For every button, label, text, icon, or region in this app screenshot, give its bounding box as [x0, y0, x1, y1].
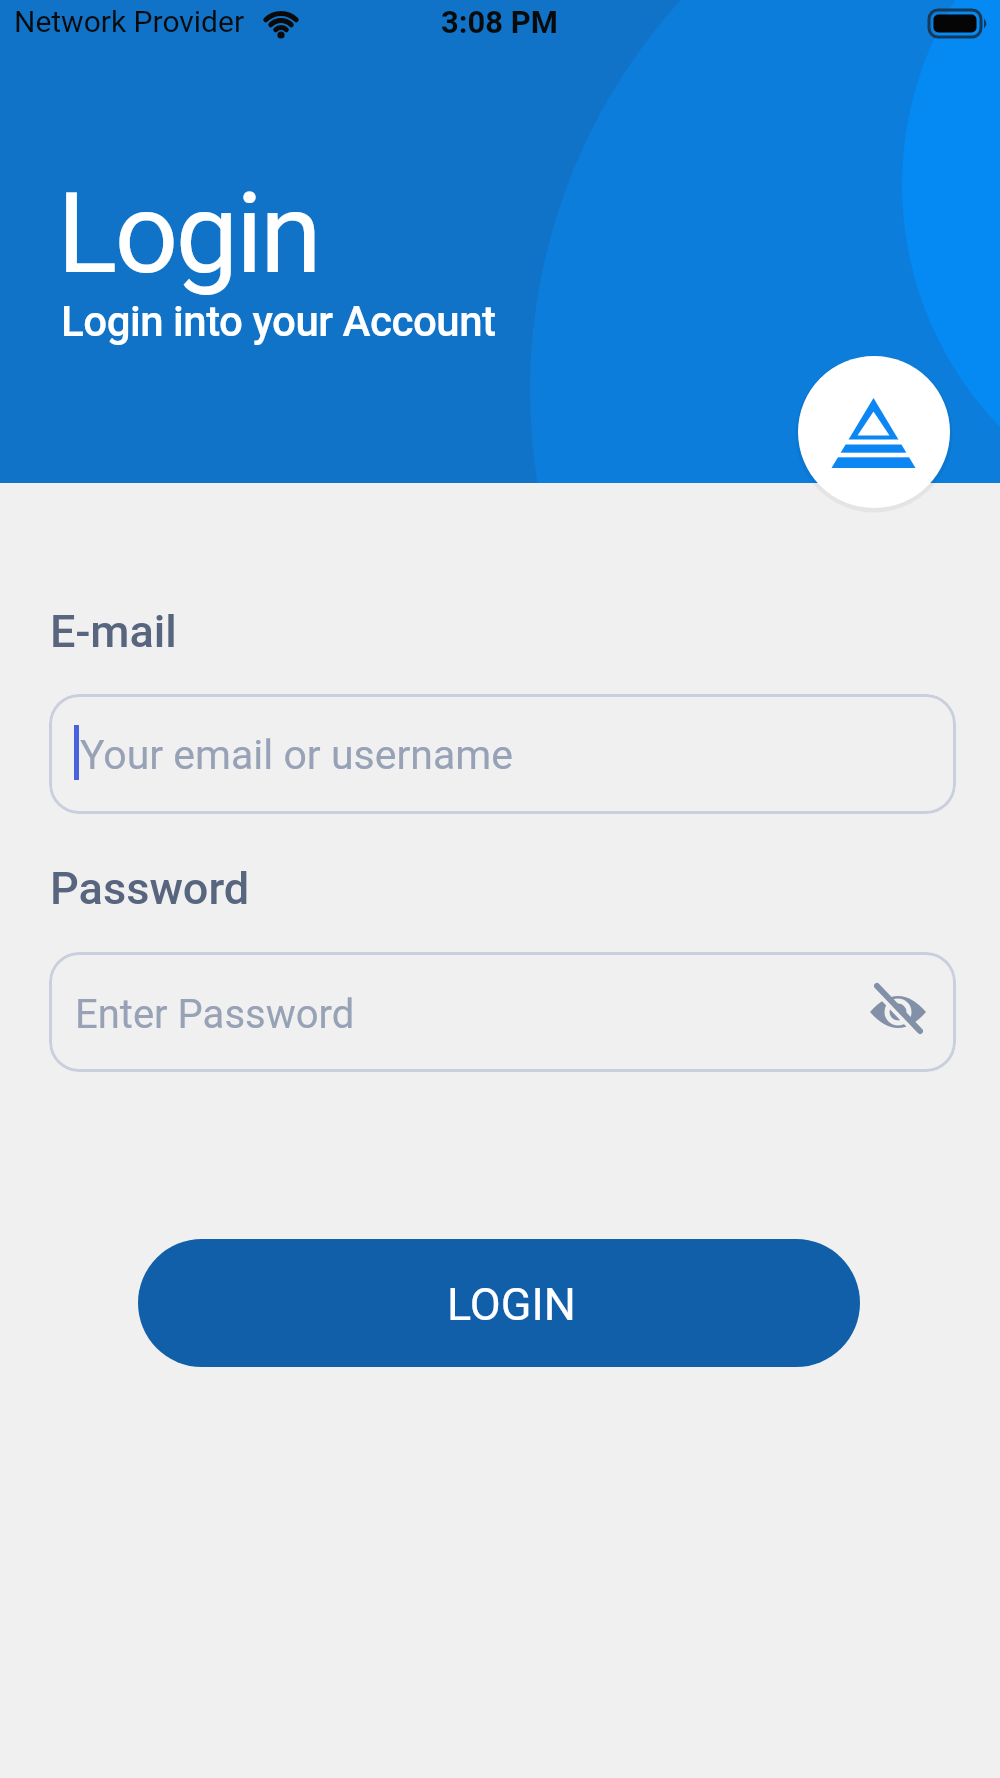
staticText: Your email or username	[80, 731, 513, 779]
staticText: E-mail	[50, 605, 177, 658]
button[interactable]	[868, 982, 928, 1042]
staticText: Enter Password	[75, 991, 355, 1038]
button[interactable]: Your email or username	[49, 694, 956, 814]
staticText: 3:08 PM	[441, 4, 558, 40]
button[interactable]: Enter Password	[49, 952, 956, 1072]
staticText: Network Provider	[14, 4, 245, 39]
staticText: LOGIN	[447, 1278, 576, 1331]
staticText: Password	[50, 862, 250, 915]
staticText: Login	[57, 168, 320, 299]
button[interactable]: LOGIN	[138, 1239, 860, 1367]
staticText: Login into your Account	[61, 297, 496, 346]
